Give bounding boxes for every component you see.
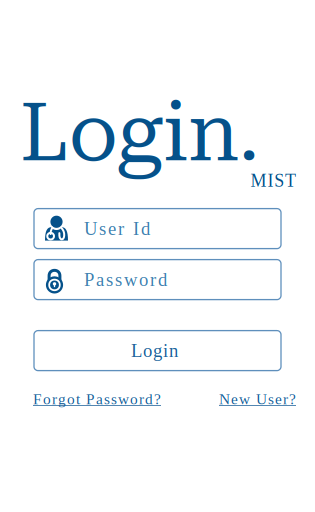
staticText: User Id <box>84 218 150 239</box>
staticText: Forgot Password? <box>33 391 161 408</box>
staticText: Password <box>84 269 167 290</box>
button[interactable]: Forgot Password? <box>33 391 161 408</box>
staticText: MIST <box>251 171 296 191</box>
staticText: Login. <box>20 86 259 180</box>
staticText: Login <box>131 340 178 361</box>
button[interactable]: New User? <box>219 391 296 408</box>
button[interactable]: Login <box>34 331 281 371</box>
staticText: New User? <box>219 391 296 408</box>
